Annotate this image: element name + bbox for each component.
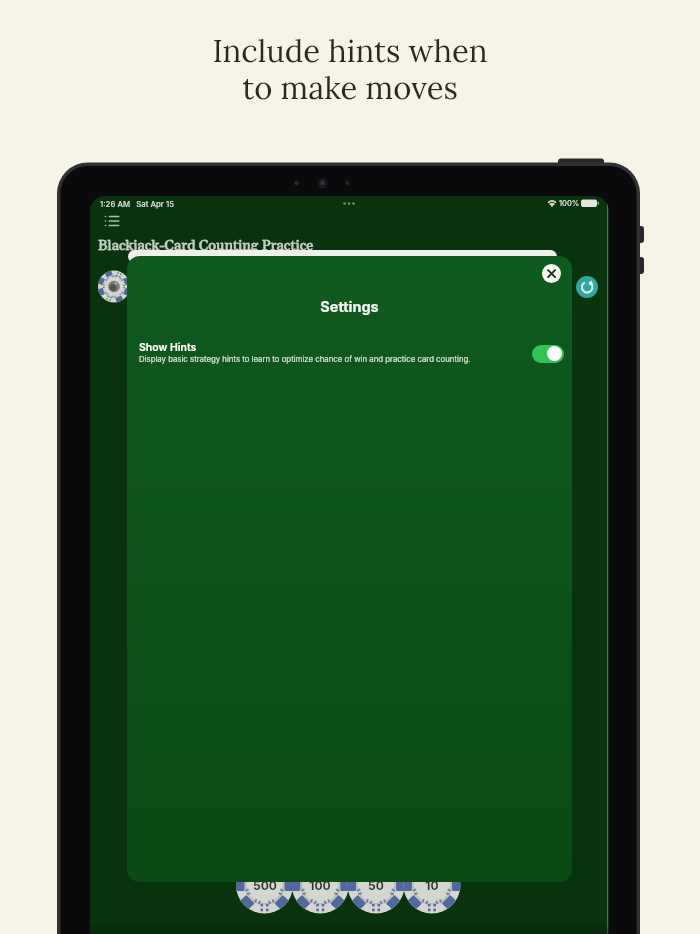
staticText: Blackjack-Card Counting Practice <box>98 237 314 255</box>
staticText: 500 <box>250 878 280 893</box>
staticText: Settings <box>127 298 572 316</box>
button[interactable] <box>292 857 349 914</box>
staticText: Show Hints <box>139 341 197 354</box>
staticText: 100% <box>559 199 580 208</box>
staticText: Include hints when to make moves <box>0 31 700 108</box>
button[interactable] <box>236 857 293 914</box>
staticText: 50 <box>361 878 391 893</box>
staticText: Display basic strategy hints to learn to… <box>139 354 471 363</box>
button[interactable] <box>100 208 126 230</box>
button[interactable] <box>403 857 460 914</box>
staticText: 100 <box>305 878 335 893</box>
staticText: 10 <box>417 878 447 893</box>
button[interactable] <box>532 345 564 363</box>
button[interactable] <box>576 276 598 298</box>
staticText: 1:26 AM Sat Apr 15 <box>100 199 174 208</box>
button[interactable] <box>542 264 561 283</box>
button[interactable] <box>348 857 405 914</box>
